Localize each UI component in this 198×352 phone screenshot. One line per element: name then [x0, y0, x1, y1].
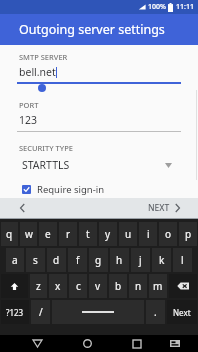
staticText: x	[55, 279, 61, 293]
staticText: .	[154, 305, 157, 319]
staticText: u	[125, 227, 132, 241]
button[interactable]: h	[110, 248, 129, 272]
staticText: 11:11	[176, 2, 194, 12]
button[interactable]: z	[30, 274, 47, 298]
other: Open dropdown	[165, 163, 172, 168]
button[interactable]: u	[119, 222, 137, 246]
button[interactable]: a	[6, 248, 24, 272]
staticText: Outgoing server settings	[19, 21, 165, 38]
staticText: o	[165, 227, 172, 241]
staticText: h	[116, 253, 123, 267]
button[interactable]: v	[89, 274, 107, 298]
staticText: STARTTLS	[22, 158, 70, 172]
button[interactable]: Shift	[1, 274, 28, 298]
staticText: v	[95, 279, 101, 293]
staticText: s	[33, 253, 38, 267]
button[interactable]: e	[39, 222, 57, 246]
button[interactable]: .	[146, 300, 165, 324]
button[interactable]: y	[99, 222, 117, 246]
button[interactable]: b	[109, 274, 127, 298]
button[interactable]: Home	[76, 335, 98, 352]
button[interactable]: Require sign-in	[0, 181, 198, 197]
button[interactable]: o	[159, 222, 177, 246]
button[interactable]: Backspace	[169, 274, 197, 298]
button[interactable]: r	[59, 222, 77, 246]
button[interactable]: s	[26, 248, 45, 272]
button[interactable]: k	[152, 248, 171, 272]
staticText: b	[115, 279, 122, 293]
staticText: q	[6, 227, 13, 241]
button[interactable]: g	[89, 248, 108, 272]
button[interactable]: f	[68, 248, 87, 272]
staticText: i	[147, 227, 150, 241]
staticText: d	[53, 253, 60, 267]
button[interactable]: t	[79, 222, 97, 246]
staticText: c	[76, 279, 81, 293]
staticText: SECURITY TYPE	[19, 143, 73, 153]
staticText: bell.net	[19, 65, 56, 79]
staticText: Next	[173, 307, 191, 318]
button[interactable]: Space	[52, 300, 144, 324]
button[interactable]: NEXT	[148, 198, 198, 218]
button[interactable]: c	[69, 274, 87, 298]
button[interactable]: p	[179, 222, 197, 246]
staticText: SMTP SERVER	[19, 52, 68, 62]
staticText: Require sign-in	[37, 183, 105, 196]
staticText: y	[105, 227, 111, 241]
button[interactable]: d	[47, 248, 66, 272]
staticText: 123	[19, 113, 38, 127]
staticText: 100%	[148, 2, 166, 12]
staticText: l	[181, 253, 184, 267]
staticText: m	[153, 279, 163, 293]
button[interactable]: w	[20, 222, 37, 246]
staticText: p	[185, 227, 192, 241]
button[interactable]: /	[31, 300, 50, 324]
button[interactable]: x	[49, 274, 67, 298]
staticText: PORT	[19, 100, 39, 110]
button[interactable]: n	[129, 274, 147, 298]
staticText: w	[25, 227, 33, 241]
staticText: t	[86, 227, 90, 241]
staticText: j	[139, 253, 142, 267]
button[interactable]: q	[1, 222, 18, 246]
staticText: g	[95, 253, 102, 267]
staticText: ?123	[6, 307, 24, 318]
staticText: z	[36, 279, 41, 293]
staticText: a	[12, 253, 18, 267]
staticText: e	[45, 227, 51, 241]
button[interactable]: j	[131, 248, 150, 272]
button[interactable]: ?123	[1, 300, 29, 324]
staticText: /	[39, 305, 43, 319]
staticText: NEXT	[148, 202, 170, 214]
staticText: k	[159, 253, 165, 267]
button[interactable]: i	[139, 222, 157, 246]
button[interactable]: STARTTLS	[0, 158, 198, 172]
button[interactable]: l	[173, 248, 192, 272]
button[interactable]: Recent apps	[126, 335, 148, 352]
button[interactable]: Switch keyboard	[164, 335, 186, 352]
button[interactable]: Next	[167, 300, 197, 324]
staticText: r	[66, 227, 71, 241]
button[interactable]: m	[149, 274, 167, 298]
button[interactable]: Hide keyboard	[26, 335, 48, 352]
staticText: f	[76, 253, 80, 267]
staticText: n	[135, 279, 142, 293]
button[interactable]: Previous field	[0, 198, 44, 218]
